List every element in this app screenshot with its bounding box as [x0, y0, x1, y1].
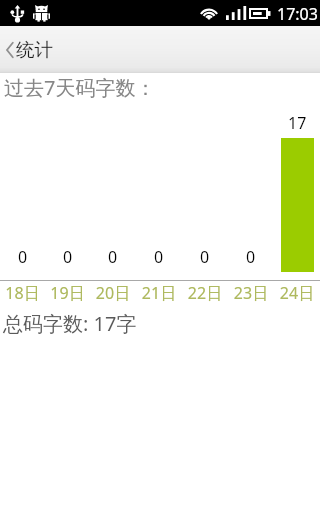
- button[interactable]: 23日 0字: [228, 102, 274, 272]
- staticText: 0: [200, 246, 210, 268]
- staticText: 22日: [182, 282, 228, 304]
- staticText: 21日: [136, 282, 182, 304]
- staticText: 23日: [228, 282, 274, 304]
- staticText: 20日: [90, 282, 136, 304]
- staticText: 0: [246, 246, 256, 268]
- staticText: 17:03: [277, 3, 318, 25]
- staticText: 过去7天码字数：: [4, 74, 156, 101]
- staticText: 总码字数: 17字: [3, 310, 137, 337]
- staticText: 0: [108, 246, 118, 268]
- button[interactable]: 24日 17字: [274, 102, 320, 272]
- other: Debugging: [33, 4, 50, 22]
- button[interactable]: 统计: [0, 26, 63, 73]
- staticText: 统计: [16, 38, 53, 61]
- staticText: 0: [154, 246, 164, 268]
- button[interactable]: 19日 0字: [45, 102, 90, 272]
- button[interactable]: 22日 0字: [182, 102, 228, 272]
- staticText: 24日: [274, 282, 320, 304]
- button[interactable]: 21日 0字: [136, 102, 182, 272]
- button[interactable]: 20日 0字: [90, 102, 136, 272]
- button[interactable]: 18日 0字: [0, 102, 45, 272]
- other: Mobile signal: [226, 6, 247, 20]
- staticText: 0: [18, 246, 28, 268]
- other: Wi-Fi signal: [200, 6, 218, 20]
- staticText: 17: [288, 112, 307, 134]
- staticText: 0: [63, 246, 73, 268]
- other: USB connected: [11, 5, 24, 22]
- staticText: 18日: [0, 282, 45, 304]
- staticText: 19日: [45, 282, 90, 304]
- other: Battery: [249, 8, 271, 19]
